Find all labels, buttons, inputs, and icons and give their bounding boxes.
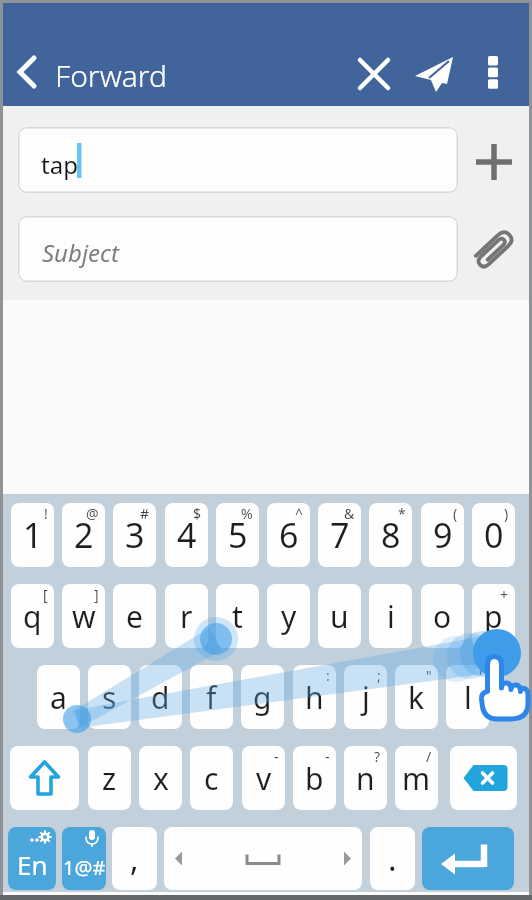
- staticText: 6: [279, 512, 299, 558]
- button[interactable]: z: [88, 746, 131, 810]
- button[interactable]: [164, 827, 362, 890]
- staticText: 7: [330, 512, 350, 558]
- staticText: m: [402, 758, 431, 799]
- button[interactable]: t: [216, 584, 259, 648]
- button[interactable]: p: [472, 584, 515, 648]
- button[interactable]: u: [318, 584, 361, 648]
- staticText: j: [362, 677, 370, 718]
- staticText: n: [356, 758, 375, 799]
- staticText: l: [464, 677, 472, 718]
- button[interactable]: f: [190, 665, 233, 729]
- button[interactable]: s: [88, 665, 131, 729]
- button[interactable]: m: [395, 746, 438, 810]
- button[interactable]: 9: [421, 503, 464, 567]
- staticText: (: [453, 504, 458, 523]
- staticText: y: [281, 596, 297, 637]
- button[interactable]: l: [446, 665, 489, 729]
- staticText: @: [86, 504, 99, 523]
- button[interactable]: 5: [216, 503, 259, 567]
- staticText: x: [153, 758, 169, 799]
- staticText: d: [151, 677, 170, 718]
- staticText: u: [330, 596, 349, 637]
- staticText: 1: [23, 512, 43, 558]
- button[interactable]: [450, 746, 517, 810]
- button[interactable]: h: [293, 665, 336, 729]
- staticText: +: [500, 585, 509, 604]
- button[interactable]: [10, 746, 79, 810]
- staticText: #: [140, 504, 150, 523]
- staticText: f: [206, 677, 217, 718]
- staticText: s: [102, 677, 117, 718]
- staticText: k: [408, 677, 425, 718]
- button[interactable]: n: [344, 746, 387, 810]
- button[interactable]: [411, 48, 463, 100]
- staticText: %: [241, 504, 253, 523]
- button[interactable]: o: [421, 584, 464, 648]
- button[interactable]: tap: [18, 127, 458, 193]
- staticText: v: [256, 758, 272, 799]
- staticText: -: [274, 747, 279, 766]
- button[interactable]: x: [139, 746, 182, 810]
- button[interactable]: [348, 48, 400, 100]
- button[interactable]: g: [241, 665, 284, 729]
- staticText: tap: [41, 148, 78, 181]
- button[interactable]: 8: [369, 503, 412, 567]
- button[interactable]: En: [8, 827, 56, 890]
- button[interactable]: q: [11, 584, 54, 648]
- button[interactable]: k: [395, 665, 438, 729]
- button[interactable]: w: [62, 584, 105, 648]
- staticText: r: [180, 596, 193, 637]
- button[interactable]: [3, 40, 233, 104]
- staticText: ,: [130, 837, 139, 881]
- button[interactable]: 3: [113, 503, 156, 567]
- button[interactable]: a: [37, 665, 80, 729]
- button[interactable]: [468, 223, 520, 275]
- button[interactable]: 1: [11, 503, 54, 567]
- button[interactable]: ,: [112, 827, 157, 890]
- button[interactable]: y: [267, 584, 310, 648]
- staticText: e: [126, 596, 143, 637]
- button[interactable]: 6: [267, 503, 310, 567]
- staticText: .: [388, 837, 397, 881]
- button[interactable]: .: [370, 827, 415, 890]
- button[interactable]: [468, 136, 520, 188]
- staticText: 4: [177, 512, 197, 558]
- staticText: q: [23, 596, 42, 637]
- button[interactable]: j: [344, 665, 387, 729]
- staticText: g: [253, 677, 272, 718]
- staticText: a: [50, 677, 67, 718]
- staticText: -: [325, 747, 330, 766]
- button[interactable]: 2: [62, 503, 105, 567]
- staticText: $: [193, 504, 202, 523]
- button[interactable]: 0: [472, 503, 515, 567]
- button[interactable]: [467, 48, 519, 100]
- button[interactable]: 1@#: [62, 827, 106, 890]
- staticText: h: [305, 677, 324, 718]
- staticText: *: [398, 504, 406, 523]
- staticText: [: [43, 585, 48, 604]
- button[interactable]: Subject: [18, 216, 458, 282]
- staticText: ]: [94, 585, 99, 604]
- staticText: p: [484, 596, 503, 637]
- button[interactable]: c: [190, 746, 233, 810]
- button[interactable]: e: [113, 584, 156, 648]
- button[interactable]: r: [165, 584, 208, 648]
- staticText: ^: [295, 504, 304, 523]
- staticText: 0: [484, 512, 504, 558]
- button[interactable]: b: [293, 746, 336, 810]
- button[interactable]: 7: [318, 503, 361, 567]
- staticText: 9: [433, 512, 453, 558]
- staticText: Forward: [55, 55, 167, 96]
- staticText: z: [102, 758, 117, 799]
- staticText: /: [426, 747, 432, 766]
- staticText: t: [232, 596, 243, 637]
- button[interactable]: i: [369, 584, 412, 648]
- staticText: !: [44, 504, 48, 523]
- button[interactable]: v: [242, 746, 285, 810]
- button[interactable]: 4: [165, 503, 208, 567]
- staticText: c: [204, 758, 219, 799]
- button[interactable]: [422, 827, 514, 890]
- button[interactable]: d: [139, 665, 182, 729]
- staticText: 8: [381, 512, 401, 558]
- staticText: ": [426, 666, 432, 685]
